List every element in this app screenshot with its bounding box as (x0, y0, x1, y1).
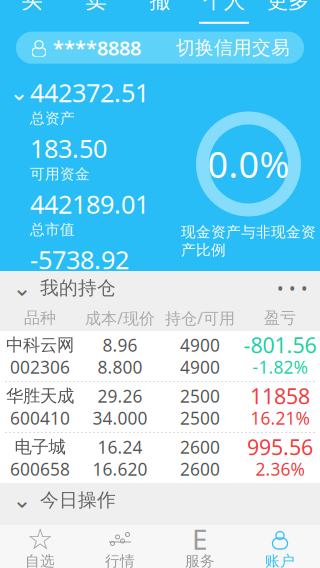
staticText: 002306 (10, 355, 70, 378)
button[interactable]: ☆ (0, 525, 80, 568)
staticText: 34.000 (92, 406, 147, 429)
staticText: ⌄ (12, 487, 31, 513)
staticText: 浮动盈亏 (30, 276, 90, 294)
staticText: 2.36% (255, 457, 304, 480)
staticText: 4900 (180, 355, 220, 378)
staticText: 撤 (149, 0, 170, 14)
staticText: 电子城 (14, 436, 65, 458)
staticText: 更多 (267, 0, 309, 14)
staticText: 我的持仓 (40, 276, 116, 299)
staticText: 8.800 (97, 355, 142, 378)
staticText: ☆ (27, 522, 53, 556)
staticText: -5738.92 (30, 243, 129, 276)
staticText: • • • (277, 276, 308, 299)
staticText: 个人 (203, 0, 245, 14)
staticText: 切换信用交易 (176, 36, 290, 59)
button[interactable]: 买 (0, 0, 64, 20)
staticText: 自选 (25, 552, 55, 568)
button[interactable]: 卖 (64, 0, 128, 20)
staticText: 2500 (180, 384, 220, 407)
staticText: -801.56 (243, 331, 316, 359)
staticText: 442372.51 (30, 76, 149, 109)
staticText: 8.96 (102, 333, 137, 356)
staticText: 成本/现价 (85, 307, 155, 329)
staticText: 16.24 (97, 435, 142, 458)
staticText: 29.26 (97, 384, 142, 407)
staticText: 中科云网 (6, 334, 74, 356)
staticText: 2600 (180, 435, 220, 458)
button[interactable]: 华胜天成 (0, 382, 320, 432)
staticText: 2600 (180, 457, 220, 480)
staticText: ⌄ (9, 80, 28, 105)
staticText: 可用资金 (30, 165, 90, 183)
staticText: 600658 (10, 457, 70, 480)
staticText: 16.21% (250, 406, 309, 429)
button[interactable]: 更多 (256, 0, 320, 20)
button[interactable]: E (160, 525, 240, 568)
button[interactable]: 个人 (192, 0, 256, 20)
staticText: ⌄ (12, 275, 31, 301)
staticText: 995.56 (247, 433, 313, 461)
staticText: 华胜天成 (6, 385, 74, 407)
button[interactable]: ****8888 (16, 32, 304, 64)
staticText: 买 (21, 0, 42, 14)
staticText: 行情 (105, 552, 135, 568)
button[interactable]: 行情 (80, 525, 160, 568)
staticText: 4900 (180, 333, 220, 356)
staticText: 600410 (10, 406, 70, 429)
staticText: 盈亏 (264, 308, 296, 328)
staticText: -1.82% (252, 355, 307, 378)
button[interactable]: 撤 (128, 0, 192, 20)
staticText: 现金资产与非现金资产比例 (181, 223, 316, 259)
staticText: 0.0% (207, 140, 289, 188)
button[interactable]: 电子城 (0, 433, 320, 483)
staticText: 183.50 (30, 131, 107, 165)
staticText: 持仓/可用 (165, 307, 235, 329)
button[interactable]: 中科云网 (0, 331, 320, 381)
staticText: 卖 (85, 0, 106, 14)
staticText: 16.620 (92, 457, 147, 480)
staticText: 账户 (265, 552, 295, 568)
staticText: 442189.01 (30, 187, 149, 221)
button[interactable]: 账户 (240, 525, 320, 568)
staticText: 服务 (185, 552, 215, 568)
staticText: 11858 (250, 382, 310, 410)
staticText: 今日操作 (40, 488, 116, 511)
button[interactable]: ⌄ (0, 271, 320, 305)
staticText: 总资产 (30, 109, 75, 127)
button[interactable]: ⌄ (0, 483, 320, 517)
staticText: E (192, 520, 208, 558)
staticText: ****8888 (53, 34, 141, 61)
staticText: 总市值 (30, 221, 75, 239)
staticText: 品种 (24, 308, 56, 328)
staticText: 2500 (180, 406, 220, 429)
